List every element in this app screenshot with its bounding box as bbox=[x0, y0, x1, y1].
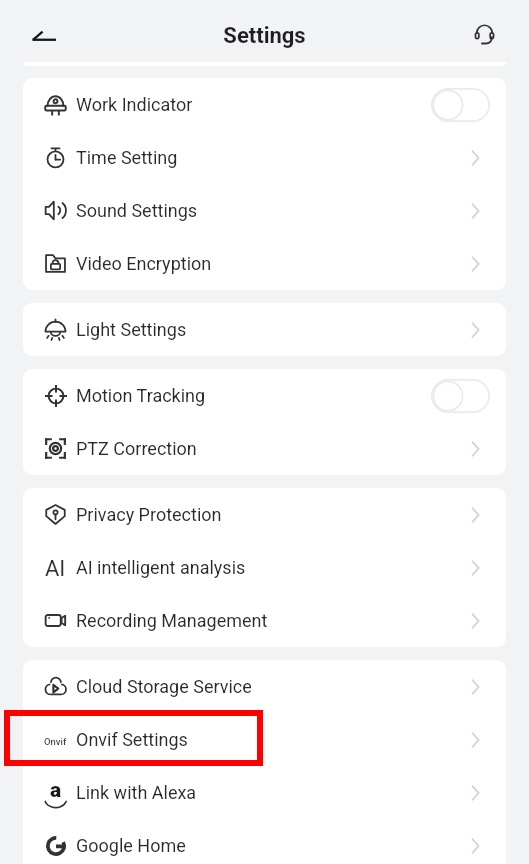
button[interactable]: Customer support bbox=[462, 12, 506, 56]
button[interactable]: Back bbox=[21, 11, 67, 57]
staticText: Sound Settings bbox=[76, 200, 198, 221]
button[interactable]: Toggle off bbox=[431, 88, 490, 122]
staticText: Link with Alexa bbox=[76, 782, 197, 803]
button[interactable]: Toggle off bbox=[431, 379, 490, 413]
staticText: PTZ Correction bbox=[76, 438, 197, 459]
staticText: Onvif bbox=[44, 736, 67, 747]
staticText: Cloud Storage Service bbox=[76, 676, 252, 697]
staticText: Light Settings bbox=[76, 319, 187, 340]
staticText: AI intelligent analysis bbox=[76, 557, 246, 578]
button[interactable]: Light Settings bbox=[23, 303, 506, 356]
button[interactable]: Google Home bbox=[23, 819, 506, 864]
button[interactable]: Motion Tracking bbox=[23, 369, 506, 422]
button[interactable]: Time Setting bbox=[23, 131, 506, 184]
button[interactable]: AI bbox=[23, 541, 506, 594]
staticText: Time Setting bbox=[76, 147, 178, 168]
staticText: Work Indicator bbox=[76, 94, 193, 115]
staticText: Settings bbox=[223, 23, 306, 49]
button[interactable]: Privacy Protection bbox=[23, 488, 506, 541]
button[interactable]: Cloud Storage Service bbox=[23, 660, 506, 713]
staticText: a bbox=[50, 778, 62, 799]
staticText: Privacy Protection bbox=[76, 504, 222, 525]
button[interactable]: Work Indicator bbox=[23, 78, 506, 131]
staticText: Google Home bbox=[76, 835, 186, 856]
button[interactable]: Onvif bbox=[23, 713, 506, 766]
button[interactable]: Video Encryption bbox=[23, 237, 506, 290]
staticText: Video Encryption bbox=[76, 253, 212, 274]
button[interactable]: PTZ Correction bbox=[23, 422, 506, 475]
staticText: Motion Tracking bbox=[76, 385, 206, 406]
staticText: Onvif Settings bbox=[76, 729, 188, 750]
staticText: Recording Management bbox=[76, 610, 268, 631]
button[interactable]: a bbox=[23, 766, 506, 819]
button[interactable]: Sound Settings bbox=[23, 184, 506, 237]
button[interactable]: Recording Management bbox=[23, 594, 506, 647]
staticText: AI bbox=[45, 556, 66, 579]
